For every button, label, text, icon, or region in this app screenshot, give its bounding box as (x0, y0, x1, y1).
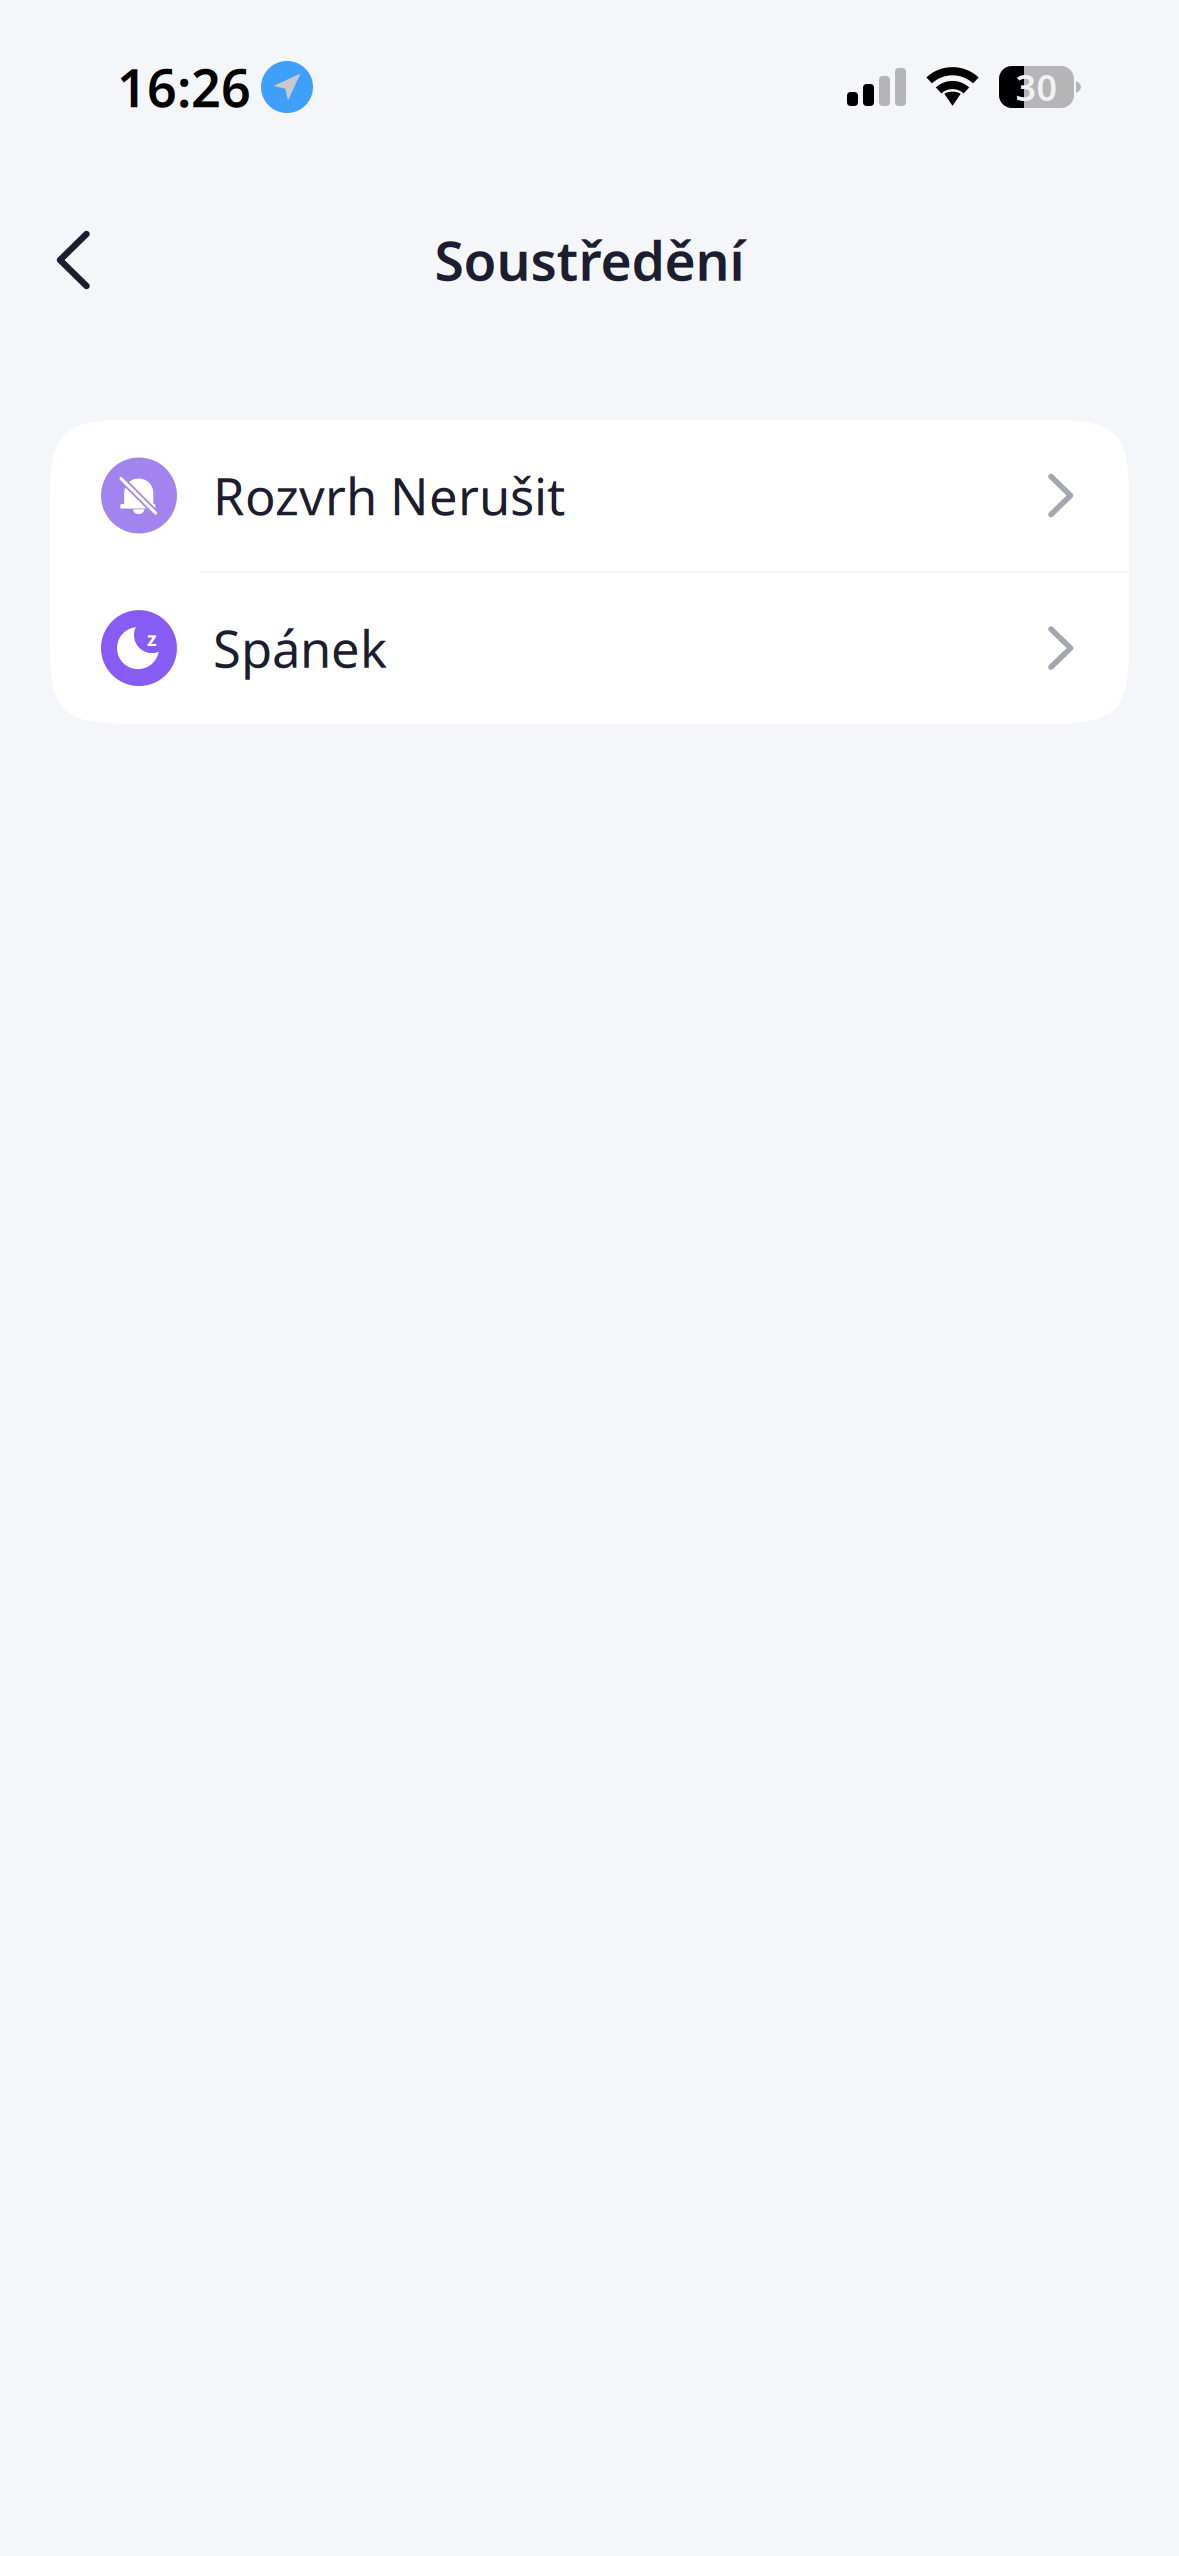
staticText: 30 (1015, 63, 1057, 111)
staticText: 16:26 (117, 52, 251, 122)
staticText: Rozvrh Nerušit (213, 462, 565, 529)
button[interactable]: z (50, 573, 1129, 724)
staticText: Spánek (213, 614, 387, 682)
staticText: Soustředění (434, 225, 744, 295)
button[interactable]: Rozvrh Nerušit (50, 420, 1129, 571)
staticText: z (147, 625, 157, 652)
button[interactable]: Back (28, 210, 118, 310)
